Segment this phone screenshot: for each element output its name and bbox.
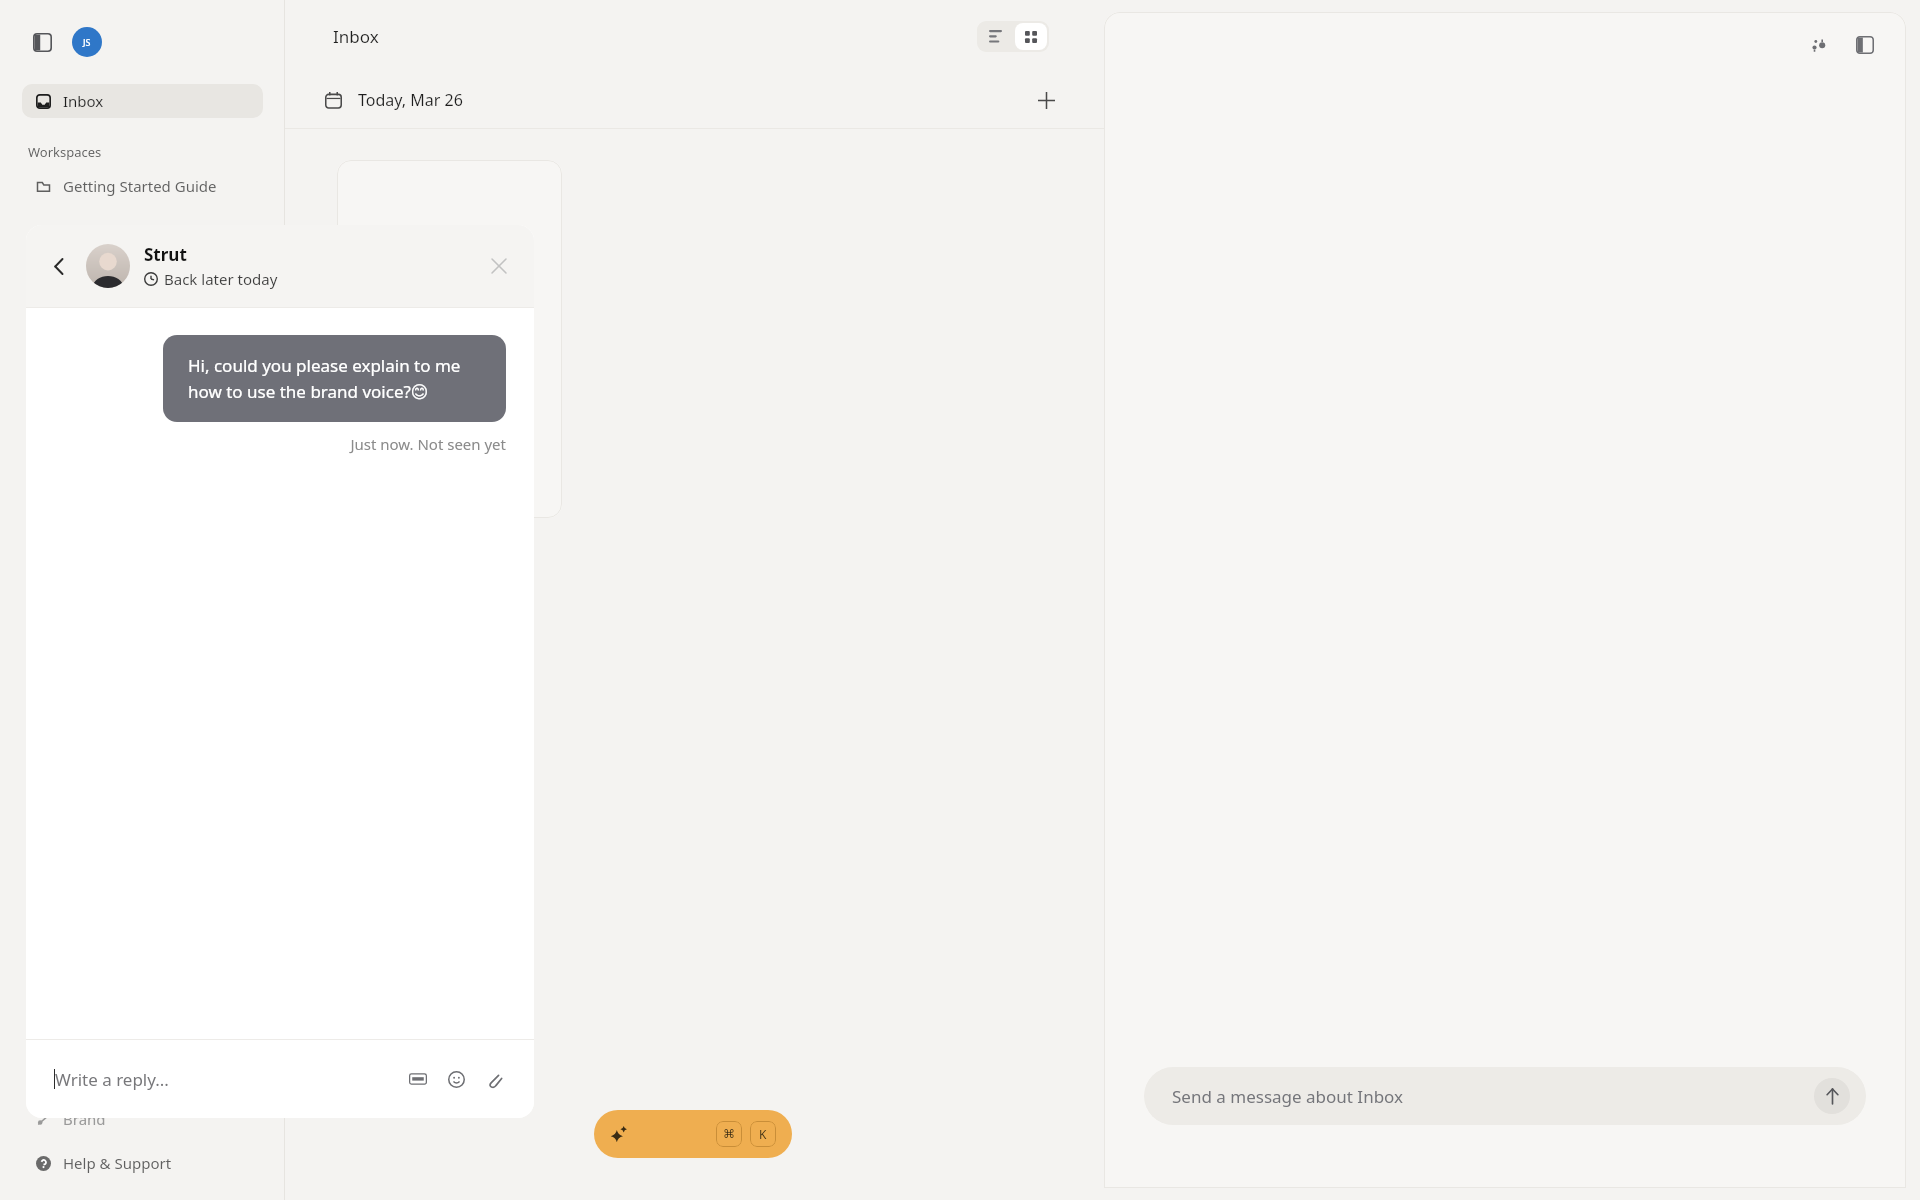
- button[interactable]: Attach file: [478, 1063, 510, 1095]
- staticText: Today, Mar 26: [358, 89, 463, 111]
- button[interactable]: List view: [977, 21, 1013, 52]
- button[interactable]: ⌘: [594, 1110, 792, 1158]
- button[interactable]: Back: [40, 247, 78, 285]
- button[interactable]: Grid view: [1015, 23, 1047, 50]
- button[interactable]: Send: [1814, 1078, 1850, 1114]
- staticText: Send a message about Inbox: [1172, 1085, 1404, 1108]
- button[interactable]: [337, 160, 562, 518]
- button[interactable]: Inbox: [22, 84, 263, 118]
- button[interactable]: Getting Started Guide: [0, 171, 285, 201]
- staticText: Workspaces: [28, 143, 102, 161]
- staticText: Write a reply...: [55, 1068, 169, 1091]
- staticText: ⌘: [723, 1127, 735, 1141]
- button[interactable]: Send a message about Inbox: [1144, 1067, 1866, 1125]
- button[interactable]: Toggle sidebar: [26, 26, 58, 58]
- staticText: Just now. Not seen yet: [54, 434, 506, 454]
- staticText: Getting Started Guide: [63, 176, 217, 196]
- button[interactable]: Write a reply...: [26, 1040, 534, 1118]
- button[interactable]: Close: [482, 249, 516, 283]
- button[interactable]: Toggle panel: [1848, 28, 1882, 62]
- button[interactable]: Brand: [0, 1104, 285, 1134]
- button[interactable]: Account JS: [72, 27, 102, 57]
- button[interactable]: Send GIF: [402, 1063, 434, 1095]
- staticText: Inbox: [333, 25, 379, 48]
- button[interactable]: Add: [1031, 85, 1061, 115]
- staticText: JS: [83, 36, 91, 48]
- staticText: Help & Support: [63, 1153, 172, 1173]
- button[interactable]: Help & Support: [0, 1148, 285, 1178]
- staticText: Strut: [144, 243, 187, 266]
- staticText: Hi, could you please explain to me how t…: [188, 354, 461, 403]
- staticText: Brand: [63, 1109, 106, 1129]
- button[interactable]: Insert emoji: [440, 1063, 472, 1095]
- button[interactable]: Settings: [1802, 28, 1836, 62]
- staticText: K: [759, 1126, 767, 1142]
- staticText: Inbox: [63, 91, 104, 111]
- staticText: Back later today: [164, 269, 278, 289]
